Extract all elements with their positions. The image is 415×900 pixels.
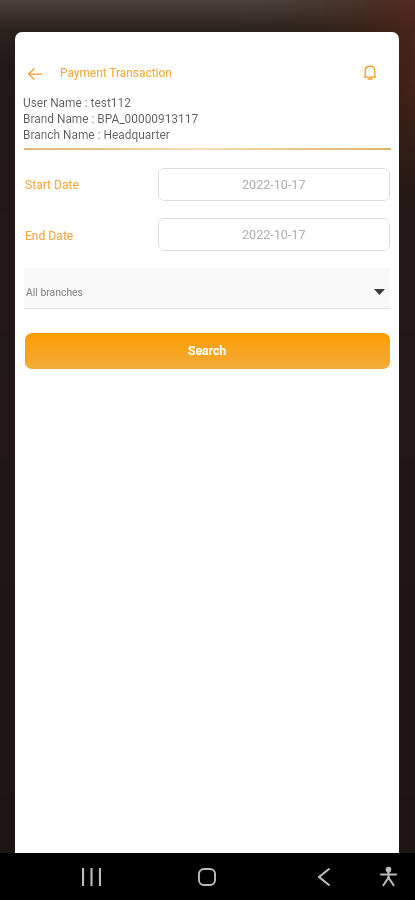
staticText: 2022-10-17: [242, 227, 306, 242]
staticText: Brand Name : BPA_00000913117: [23, 112, 199, 126]
staticText: Search: [188, 344, 227, 358]
button[interactable]: Back: [300, 853, 348, 900]
staticText: End Date: [25, 229, 74, 243]
staticText: All branches: [26, 286, 83, 298]
staticText: Start Date: [25, 178, 79, 192]
button[interactable]: Recent apps: [67, 853, 115, 900]
button[interactable]: Accessibility: [364, 853, 412, 900]
button[interactable]: Notifications: [357, 59, 383, 85]
button[interactable]: Back: [22, 61, 48, 87]
staticText: User Name : test112: [23, 96, 131, 110]
button[interactable]: All branches: [24, 268, 390, 308]
staticText: 2022-10-17: [242, 177, 306, 192]
staticText: Branch Name : Headquarter: [23, 128, 170, 142]
button[interactable]: 2022-10-17: [158, 218, 390, 251]
button[interactable]: Search: [25, 333, 390, 369]
staticText: Payment Transaction: [60, 66, 172, 80]
button[interactable]: Home: [183, 853, 231, 900]
button[interactable]: 2022-10-17: [158, 168, 390, 201]
